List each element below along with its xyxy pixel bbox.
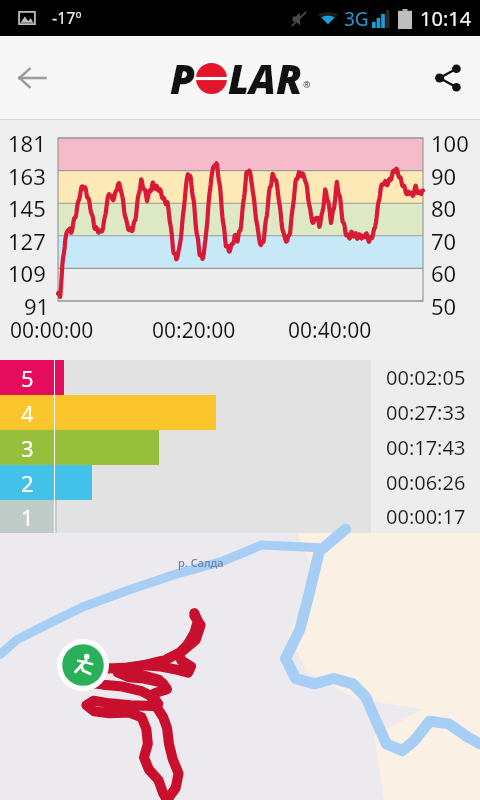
staticText: 00:27:33 — [386, 399, 466, 426]
staticText: P — [170, 51, 195, 105]
staticText: 145 — [8, 193, 46, 223]
staticText: 00:17:43 — [386, 434, 466, 461]
button[interactable]: 2 — [0, 465, 480, 500]
staticText: 80 — [431, 193, 457, 223]
staticText: 50 — [431, 291, 457, 321]
button[interactable]: 3 — [0, 430, 480, 465]
staticText: 00:02:05 — [386, 364, 466, 391]
button[interactable]: Start point — [57, 639, 109, 691]
staticText: ® — [303, 78, 311, 90]
button[interactable]: Share — [416, 46, 480, 110]
staticText: р. Салда — [178, 555, 224, 570]
staticText: 10:14 — [420, 5, 472, 32]
staticText: 100 — [431, 128, 469, 158]
staticText: 2 — [21, 468, 34, 498]
staticText: 00:00:00 — [10, 316, 94, 345]
staticText: 181 — [8, 128, 46, 158]
button[interactable]: Back — [0, 46, 64, 110]
staticText: 127 — [8, 226, 46, 256]
staticText: 5 — [21, 363, 34, 393]
staticText: 00:40:00 — [288, 316, 372, 345]
staticText: 60 — [431, 258, 457, 288]
staticText: 90 — [431, 161, 457, 191]
button[interactable]: 1 — [0, 500, 480, 533]
staticText: 91 — [24, 291, 50, 321]
staticText: -17º — [52, 7, 82, 29]
button[interactable]: 5 — [0, 360, 480, 395]
staticText: 00:00:17 — [386, 503, 466, 530]
staticText: 109 — [8, 258, 46, 288]
staticText: 3 — [21, 433, 34, 463]
staticText: LAR — [228, 51, 303, 105]
staticText: 70 — [431, 226, 457, 256]
staticText: 00:20:00 — [152, 316, 236, 345]
staticText: 00:06:26 — [386, 469, 466, 496]
staticText: 163 — [8, 161, 46, 191]
staticText: 4 — [21, 398, 34, 428]
button[interactable]: 4 — [0, 395, 480, 430]
button[interactable]: р. Салда — [0, 533, 480, 800]
staticText: 1 — [21, 502, 34, 532]
staticText: 3G — [344, 6, 369, 32]
